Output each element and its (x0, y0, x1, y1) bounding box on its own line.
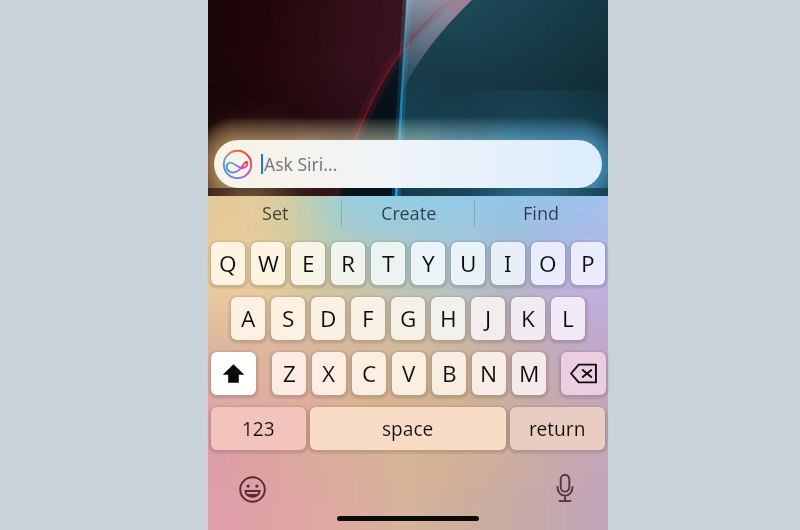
staticText: Set (262, 201, 289, 226)
button[interactable]: Z (272, 352, 306, 395)
button[interactable]: T (371, 242, 405, 285)
button[interactable]: Q (211, 242, 245, 285)
button[interactable]: space (310, 407, 506, 450)
staticText: S (282, 303, 295, 334)
button[interactable]: F (351, 297, 385, 340)
button[interactable]: L (551, 297, 585, 340)
button[interactable]: U (451, 242, 485, 285)
button[interactable]: Find (475, 198, 608, 228)
staticText: W (258, 248, 279, 279)
button[interactable]: M (512, 352, 546, 395)
button[interactable]: A (231, 297, 265, 340)
button[interactable]: Backspace (561, 352, 606, 395)
button[interactable]: H (431, 297, 465, 340)
staticText: Find (523, 201, 560, 226)
button[interactable]: Ask Siri... (214, 140, 602, 188)
staticText: R (341, 248, 355, 279)
button[interactable]: G (391, 297, 425, 340)
staticText: C (362, 358, 377, 389)
staticText: 123 (242, 416, 275, 442)
staticText: K (521, 303, 535, 334)
staticText: I (504, 248, 512, 279)
staticText: A (241, 303, 256, 334)
staticText: U (460, 248, 477, 279)
staticText: Create (381, 201, 437, 226)
button[interactable]: R (331, 242, 365, 285)
staticText: O (539, 248, 557, 279)
button[interactable]: return (510, 407, 605, 450)
button[interactable]: W (251, 242, 285, 285)
staticText: Z (283, 358, 296, 389)
staticText: return (529, 416, 586, 442)
staticText: D (320, 303, 337, 334)
staticText: F (362, 303, 374, 334)
staticText: L (562, 303, 574, 334)
button[interactable]: E (291, 242, 325, 285)
staticText: N (480, 358, 498, 389)
staticText: M (519, 358, 540, 389)
button[interactable]: O (531, 242, 565, 285)
button[interactable]: S (271, 297, 305, 340)
button[interactable]: B (432, 352, 466, 395)
staticText: X (322, 358, 336, 389)
staticText: T (382, 248, 395, 279)
staticText: V (402, 358, 416, 389)
staticText: H (440, 303, 457, 334)
staticText: Y (422, 248, 435, 279)
button[interactable]: Shift (211, 352, 256, 395)
staticText: P (581, 248, 595, 279)
staticText: Ask Siri... (264, 152, 338, 176)
button[interactable]: 123 (211, 407, 306, 450)
button[interactable]: X (312, 352, 346, 395)
button[interactable]: D (311, 297, 345, 340)
button[interactable]: K (511, 297, 545, 340)
button[interactable]: V (392, 352, 426, 395)
staticText: space (382, 416, 434, 442)
button[interactable]: P (571, 242, 605, 285)
button[interactable]: Set (208, 198, 342, 228)
button[interactable]: J (471, 297, 505, 340)
button[interactable]: Y (411, 242, 445, 285)
button[interactable]: Emoji (235, 472, 269, 506)
staticText: B (442, 358, 457, 389)
button[interactable]: N (472, 352, 506, 395)
staticText: G (400, 303, 417, 334)
button[interactable]: C (352, 352, 386, 395)
button[interactable]: Create (342, 198, 475, 228)
button[interactable]: I (491, 242, 525, 285)
staticText: J (485, 303, 492, 334)
staticText: E (302, 248, 315, 279)
button[interactable]: Dictate (548, 471, 582, 505)
staticText: Q (219, 248, 237, 279)
